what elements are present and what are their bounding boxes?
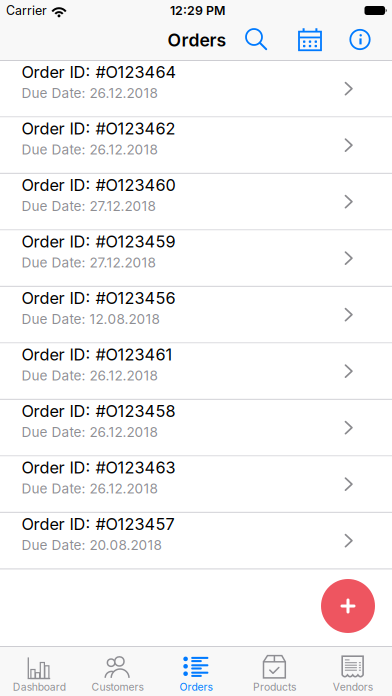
staticText: Order ID: #O123456 [21, 288, 175, 308]
staticText: Due Date: 26.12.2018 [21, 480, 157, 497]
staticText: Orders [179, 681, 212, 693]
staticText: Order ID: #O123461 [21, 345, 172, 364]
staticText: Due Date: 26.12.2018 [21, 85, 157, 101]
staticText: Orders [167, 29, 226, 51]
staticText: Dashboard [13, 681, 66, 693]
button[interactable]: Order ID: #O123464 [0, 61, 392, 116]
button[interactable]: Info [349, 29, 370, 50]
button[interactable]: Calendar [298, 28, 322, 51]
button[interactable]: Order ID: #O123457 [0, 513, 392, 568]
staticText: Order ID: #O123464 [21, 62, 176, 82]
button[interactable]: Order ID: #O123456 [0, 287, 392, 342]
staticText: Order ID: #O123459 [21, 232, 175, 251]
staticText: Customers [92, 681, 144, 693]
staticText: Order ID: #O123462 [21, 119, 175, 138]
button[interactable]: Order ID: #O123461 [0, 343, 392, 399]
button[interactable]: Add Order [321, 579, 375, 633]
button[interactable]: Order ID: #O123459 [0, 230, 392, 286]
staticText: Due Date: 27.12.2018 [21, 198, 155, 214]
button[interactable]: Vendors [314, 647, 392, 696]
staticText: Order ID: #O123463 [21, 458, 175, 477]
button[interactable]: Order ID: #O123458 [0, 400, 392, 455]
button[interactable]: Dashboard [0, 647, 78, 696]
button[interactable]: Order ID: #O123460 [0, 174, 392, 229]
staticText: Due Date: 27.12.2018 [21, 254, 155, 271]
staticText: Due Date: 20.08.2018 [21, 537, 161, 553]
staticText: Products [253, 681, 296, 693]
staticText: Order ID: #O123460 [21, 175, 175, 195]
button[interactable]: Orders [157, 647, 235, 696]
staticText: Due Date: 26.12.2018 [21, 141, 157, 158]
button[interactable]: Products [235, 647, 314, 696]
button[interactable]: Search [244, 28, 267, 50]
staticText: Due Date: 26.12.2018 [21, 424, 157, 440]
staticText: Vendors [333, 681, 373, 693]
button[interactable]: Order ID: #O123463 [0, 456, 392, 512]
staticText: Due Date: 26.12.2018 [21, 367, 157, 384]
button[interactable]: Order ID: #O123462 [0, 117, 392, 173]
staticText: 12:29 PM [170, 3, 225, 18]
button[interactable]: Customers [78, 647, 157, 696]
staticText: Carrier [6, 3, 47, 18]
staticText: Order ID: #O123458 [21, 401, 175, 421]
staticText: Order ID: #O123457 [21, 514, 174, 534]
staticText: Due Date: 12.08.2018 [21, 311, 159, 327]
